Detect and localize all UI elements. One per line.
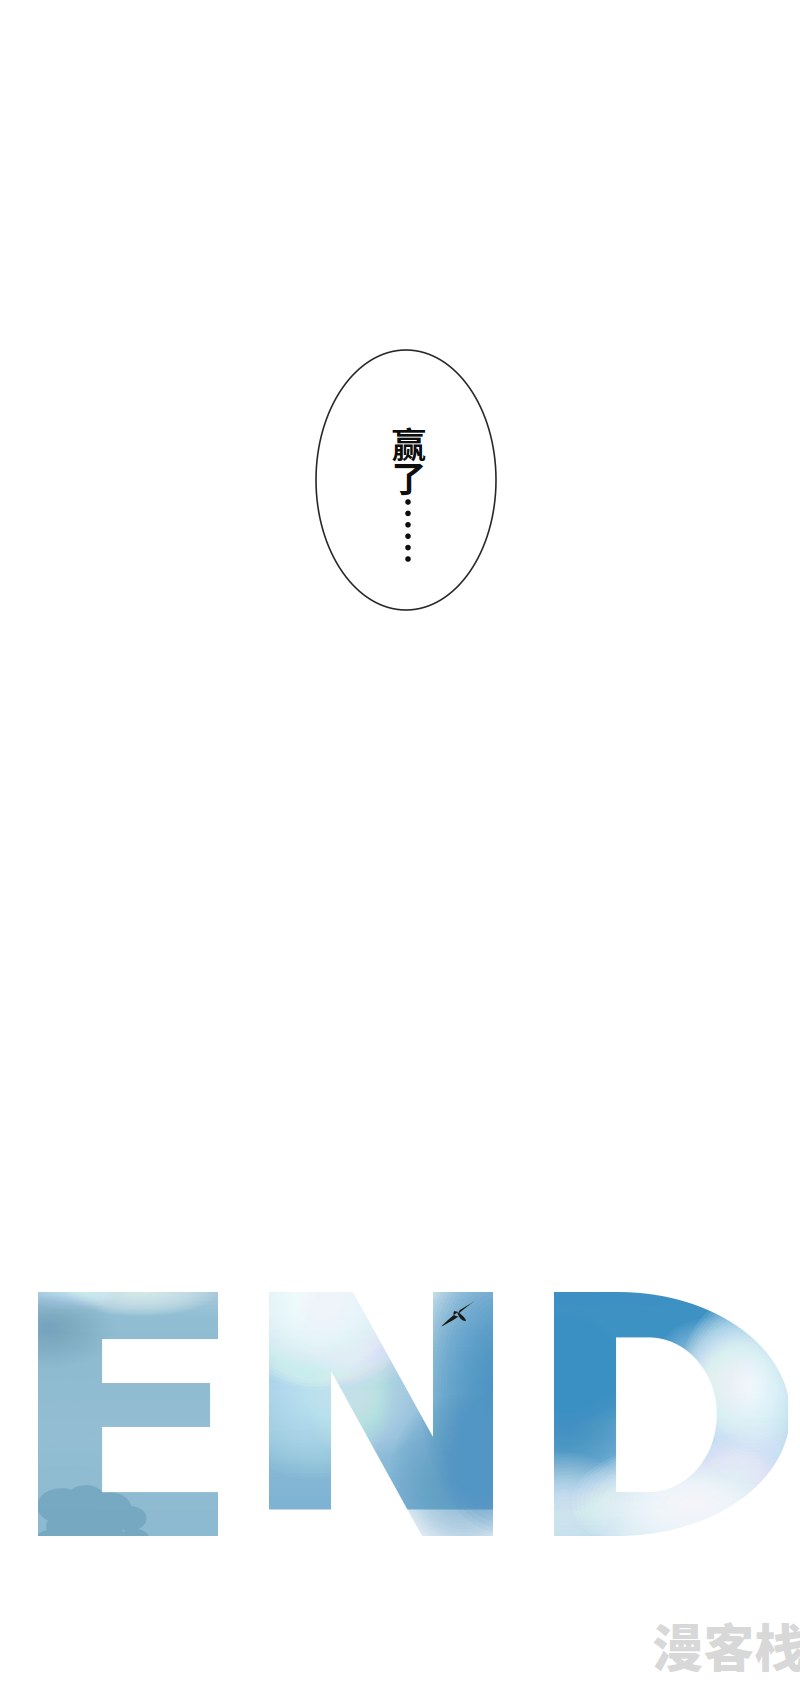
staticText: 了	[391, 452, 426, 502]
staticText: 漫客栈	[652, 1608, 800, 1682]
staticText: 赢	[391, 418, 426, 468]
